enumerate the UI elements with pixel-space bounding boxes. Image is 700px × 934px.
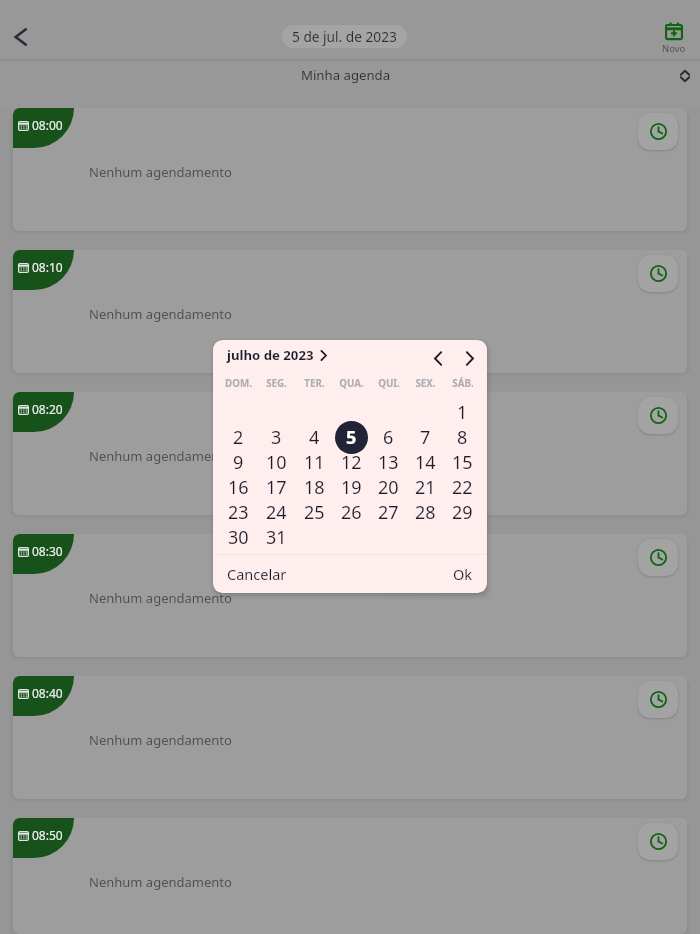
staticText: 28 bbox=[415, 500, 436, 525]
button[interactable]: 14 bbox=[407, 450, 444, 475]
button[interactable]: 1 bbox=[444, 400, 481, 425]
button[interactable]: 16 bbox=[219, 475, 257, 500]
staticText: 4 bbox=[309, 425, 320, 450]
staticText: Minha agenda bbox=[301, 66, 391, 84]
button[interactable]: julho de 2023 bbox=[227, 346, 329, 364]
staticText: 19 bbox=[341, 475, 362, 500]
staticText: 15 bbox=[452, 450, 473, 475]
button[interactable]: 11 bbox=[295, 450, 333, 475]
button[interactable]: 29 bbox=[444, 500, 481, 525]
button[interactable]: Novo bbox=[662, 22, 686, 55]
button[interactable]: Definir horario bbox=[638, 823, 678, 860]
button[interactable]: 24 bbox=[257, 500, 295, 525]
staticText: 08:00 bbox=[32, 117, 63, 133]
button[interactable]: 27 bbox=[370, 500, 407, 525]
staticText: 30 bbox=[228, 525, 249, 550]
button[interactable]: 17 bbox=[257, 475, 295, 500]
button[interactable]: 30 bbox=[219, 525, 257, 550]
staticText: 9 bbox=[233, 450, 244, 475]
staticText: 16 bbox=[228, 475, 249, 500]
staticText: 08:20 bbox=[32, 401, 63, 417]
button[interactable]: 13 bbox=[370, 450, 407, 475]
button[interactable]: 10 bbox=[257, 450, 295, 475]
button[interactable]: 18 bbox=[295, 475, 333, 500]
button[interactable]: 7 bbox=[407, 425, 444, 450]
staticText: 08:30 bbox=[32, 543, 63, 559]
staticText: 22 bbox=[452, 475, 473, 500]
staticText: 29 bbox=[452, 500, 473, 525]
button[interactable]: 21 bbox=[407, 475, 444, 500]
button[interactable]: 5 de jul. de 2023 bbox=[282, 25, 407, 48]
staticText: 21 bbox=[415, 475, 436, 500]
button[interactable]: 08:10 bbox=[13, 250, 687, 373]
staticText: 12 bbox=[341, 450, 362, 475]
staticText: 6 bbox=[383, 425, 394, 450]
staticText: 8 bbox=[457, 425, 468, 450]
staticText: 11 bbox=[304, 450, 325, 475]
staticText: Nenhum agendamento bbox=[89, 873, 232, 891]
button[interactable]: Proximo mes bbox=[456, 344, 484, 372]
button[interactable]: 9 bbox=[219, 450, 257, 475]
button[interactable]: Definir horario bbox=[638, 681, 678, 718]
button[interactable]: Expandir bbox=[672, 63, 698, 89]
button[interactable]: Definir horario bbox=[638, 539, 678, 576]
button[interactable]: 08:00 bbox=[13, 108, 687, 231]
button[interactable]: 20 bbox=[370, 475, 407, 500]
staticText: Nenhum agendamento bbox=[89, 447, 232, 465]
button[interactable]: 25 bbox=[295, 500, 333, 525]
button[interactable]: 31 bbox=[257, 525, 295, 550]
button[interactable]: Definir horario bbox=[638, 113, 678, 150]
button[interactable]: 12 bbox=[333, 450, 370, 475]
staticText: 13 bbox=[378, 450, 399, 475]
button[interactable]: 08:30 bbox=[13, 534, 687, 657]
staticText: Ok bbox=[453, 564, 473, 584]
staticText: SEX. bbox=[415, 377, 436, 390]
staticText: 5 de jul. de 2023 bbox=[292, 27, 397, 46]
button[interactable]: 28 bbox=[407, 500, 444, 525]
staticText: 26 bbox=[341, 500, 362, 525]
staticText: julho de 2023 bbox=[227, 346, 314, 364]
button[interactable]: Definir horario bbox=[638, 397, 678, 434]
staticText: 08:40 bbox=[32, 685, 63, 701]
button[interactable]: 3 bbox=[257, 425, 295, 450]
button[interactable]: 19 bbox=[333, 475, 370, 500]
button[interactable]: 2 bbox=[219, 425, 257, 450]
button[interactable]: Definir horario bbox=[638, 255, 678, 292]
button[interactable]: 4 bbox=[295, 425, 333, 450]
button[interactable]: 23 bbox=[219, 500, 257, 525]
staticText: 31 bbox=[266, 525, 287, 550]
staticText: 17 bbox=[266, 475, 287, 500]
button[interactable]: Mes anterior bbox=[424, 344, 452, 372]
button[interactable]: 15 bbox=[444, 450, 481, 475]
button[interactable]: 26 bbox=[333, 500, 370, 525]
button[interactable]: 08:20 bbox=[13, 392, 687, 515]
staticText: Nenhum agendamento bbox=[89, 163, 232, 181]
staticText: 2 bbox=[233, 425, 244, 450]
staticText: 1 bbox=[457, 400, 468, 425]
staticText: QUI. bbox=[378, 377, 400, 390]
staticText: 20 bbox=[378, 475, 399, 500]
button[interactable]: 8 bbox=[444, 425, 481, 450]
button[interactable]: 22 bbox=[444, 475, 481, 500]
staticText: 25 bbox=[304, 500, 325, 525]
button[interactable]: Ok bbox=[453, 564, 473, 584]
button[interactable]: 08:40 bbox=[13, 676, 687, 799]
staticText: Cancelar bbox=[227, 564, 287, 584]
button[interactable]: Cancelar bbox=[227, 564, 287, 584]
staticText: Nenhum agendamento bbox=[89, 305, 232, 323]
staticText: Nenhum agendamento bbox=[89, 731, 232, 749]
staticText: 7 bbox=[420, 425, 431, 450]
staticText: TER. bbox=[304, 377, 325, 390]
staticText: 23 bbox=[228, 500, 249, 525]
staticText: DOM. bbox=[225, 377, 252, 390]
button[interactable]: 6 bbox=[370, 425, 407, 450]
button[interactable]: 08:50 bbox=[13, 818, 687, 934]
staticText: SEG. bbox=[266, 377, 287, 390]
staticText: SÁB. bbox=[452, 377, 474, 390]
staticText: 5 bbox=[346, 425, 357, 450]
staticText: Nenhum agendamento bbox=[89, 589, 232, 607]
staticText: 14 bbox=[415, 450, 436, 475]
button[interactable]: 5 bbox=[333, 425, 370, 450]
button[interactable]: Voltar bbox=[1, 17, 41, 57]
staticText: 3 bbox=[271, 425, 282, 450]
